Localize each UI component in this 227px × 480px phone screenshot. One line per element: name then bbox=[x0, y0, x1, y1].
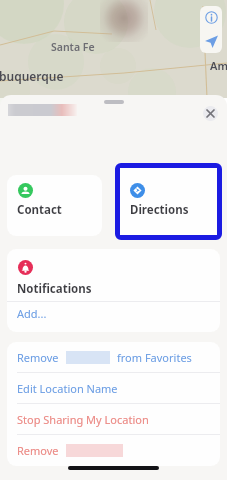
button[interactable]: Add... bbox=[7, 298, 220, 328]
staticText: Remove bbox=[17, 350, 59, 365]
staticText: Remove bbox=[17, 443, 59, 458]
button[interactable]: Edit Location Name bbox=[7, 373, 220, 404]
button[interactable]: Notifications bbox=[7, 249, 220, 301]
button[interactable]: Close bbox=[203, 106, 218, 121]
button[interactable]: My location bbox=[200, 29, 222, 53]
staticText: buquerque bbox=[0, 68, 64, 84]
staticText: Edit Location Name bbox=[17, 381, 118, 396]
staticText: from Favorites bbox=[117, 350, 192, 365]
button[interactable]: Remove bbox=[7, 435, 220, 466]
staticText: Add... bbox=[17, 306, 47, 321]
staticText: Notifications bbox=[17, 281, 92, 297]
button[interactable]: Remove bbox=[7, 342, 220, 373]
staticText: Stop Sharing My Location bbox=[17, 412, 149, 427]
staticText: Contact bbox=[17, 202, 62, 218]
button[interactable]: Info bbox=[200, 6, 222, 29]
button[interactable]: Stop Sharing My Location bbox=[7, 404, 220, 435]
staticText: Santa Fe bbox=[51, 40, 95, 54]
button[interactable]: Contact bbox=[7, 175, 102, 236]
button[interactable]: Directions bbox=[120, 168, 217, 235]
staticText: Am bbox=[210, 58, 227, 73]
staticText: Directions bbox=[130, 202, 189, 218]
